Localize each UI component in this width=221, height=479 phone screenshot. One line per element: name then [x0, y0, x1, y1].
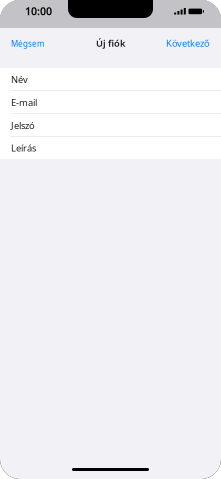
- staticText: Új fiók: [96, 37, 125, 49]
- button[interactable]: Jelszó: [0, 114, 221, 137]
- staticText: E-mail: [11, 96, 37, 109]
- staticText: Leírás: [11, 142, 36, 154]
- staticText: Következő: [166, 37, 210, 49]
- button[interactable]: Következő: [158, 28, 221, 60]
- staticText: Jelszó: [11, 119, 35, 132]
- button[interactable]: Név: [0, 68, 221, 91]
- staticText: 10:00: [25, 4, 52, 18]
- button[interactable]: Mégsem: [0, 28, 52, 60]
- button[interactable]: E-mail: [0, 91, 221, 114]
- staticText: Név: [11, 73, 28, 86]
- staticText: Mégsem: [11, 38, 44, 49]
- button[interactable]: Leírás: [0, 137, 221, 159]
